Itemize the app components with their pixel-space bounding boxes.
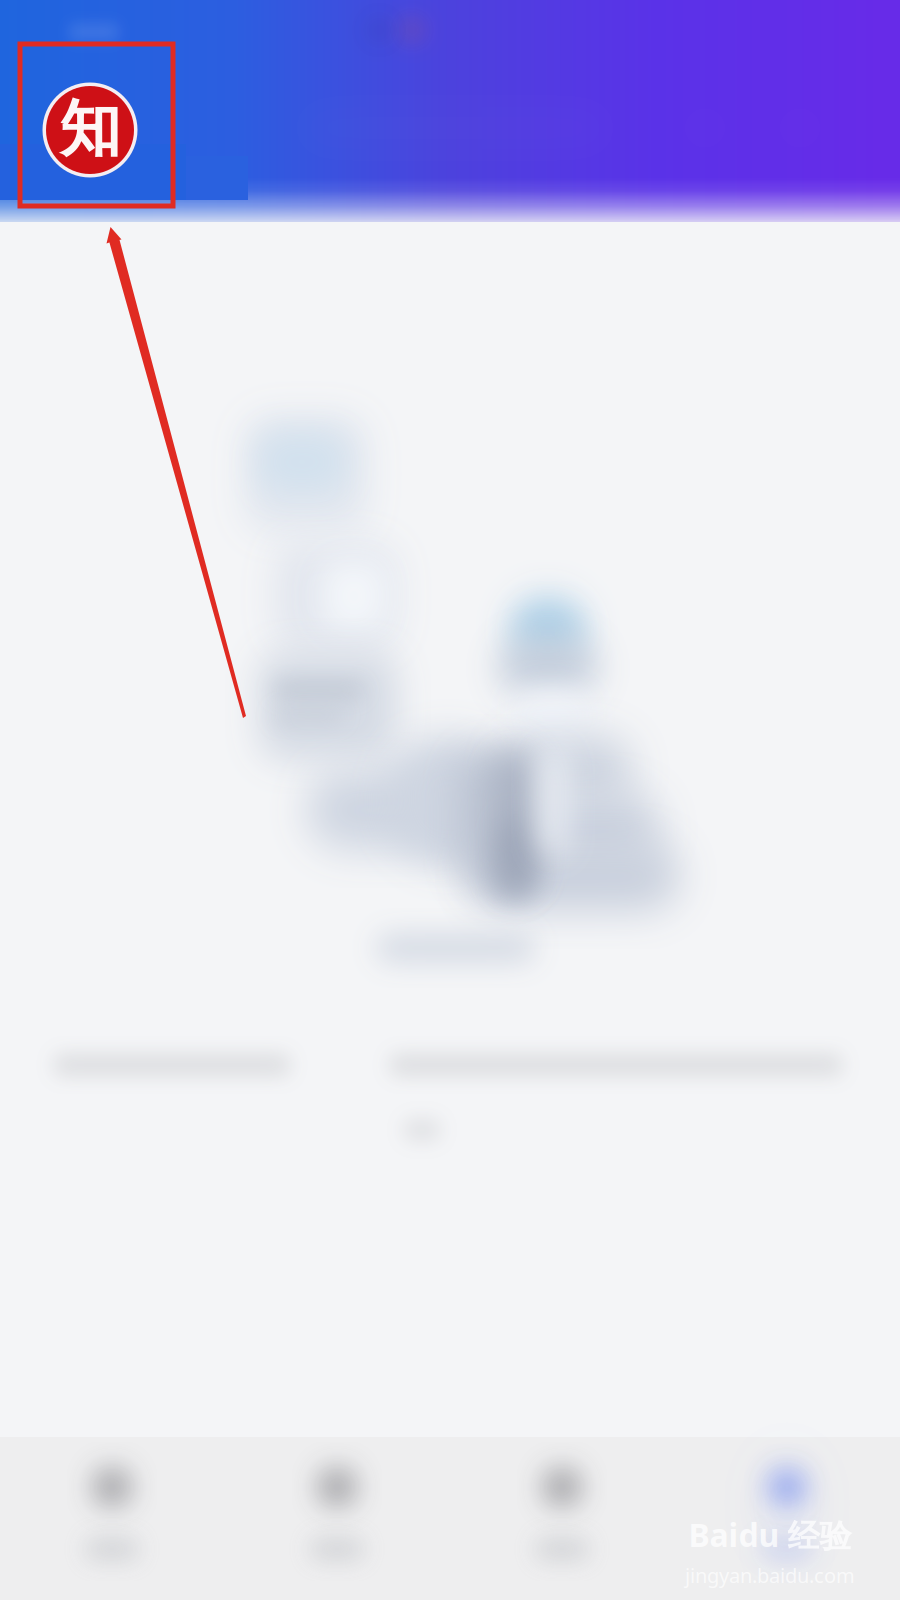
button[interactable]: Home: [0, 1437, 225, 1600]
button[interactable]: Me: [675, 1437, 900, 1600]
staticText: jingyan.baidu.com: [685, 1562, 855, 1589]
staticText: 知: [59, 91, 120, 167]
button[interactable]: Discover: [225, 1437, 450, 1600]
button[interactable]: Messages: [450, 1437, 675, 1600]
staticText: Baidu 经验: [688, 1513, 851, 1556]
